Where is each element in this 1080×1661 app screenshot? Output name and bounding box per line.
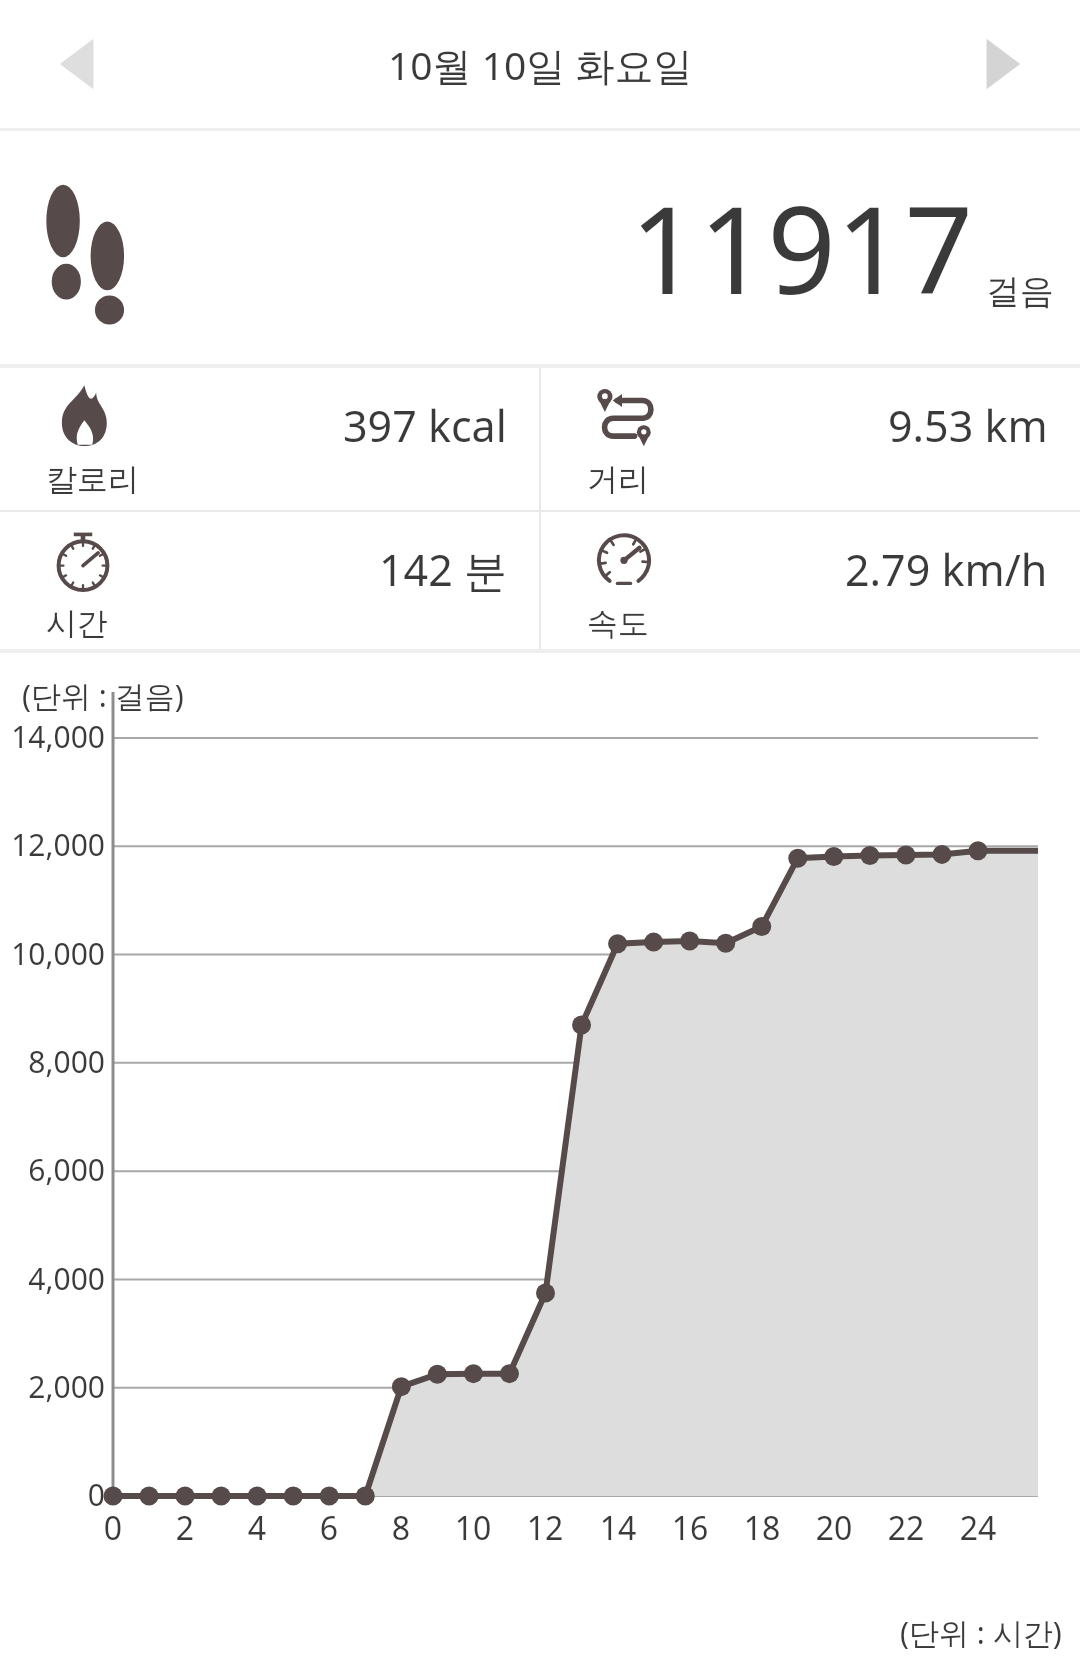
staticText: 9.53 km	[888, 396, 1048, 455]
staticText: 397 kcal	[343, 396, 507, 455]
staticText: 4	[227, 1506, 287, 1550]
staticText: 10	[443, 1506, 503, 1550]
staticText: 2,000	[10, 1366, 105, 1407]
staticText: 8	[371, 1506, 431, 1550]
staticText: 12	[515, 1506, 575, 1550]
staticText: 속도	[587, 604, 649, 643]
staticText: 6,000	[10, 1149, 105, 1190]
staticText: 10,000	[10, 933, 105, 974]
staticText: 8,000	[10, 1041, 105, 1082]
staticText: 18	[732, 1506, 792, 1550]
staticText: (단위 : 시간)	[900, 1612, 1062, 1653]
staticText: (단위 : 걸음)	[22, 675, 184, 716]
staticText: 걸음	[986, 270, 1054, 313]
staticText: 22	[876, 1506, 936, 1550]
staticText: 0	[10, 1474, 105, 1515]
staticText: 칼로리	[46, 460, 139, 499]
staticText: 6	[299, 1506, 359, 1550]
staticText: 14	[588, 1506, 648, 1550]
button[interactable]: 칼로리	[0, 368, 539, 510]
staticText: 11917	[630, 166, 974, 329]
staticText: 20	[804, 1506, 864, 1550]
staticText: 2.79 km/h	[845, 540, 1048, 599]
button[interactable]: 속도	[541, 512, 1080, 649]
staticText: 14,000	[10, 716, 105, 757]
staticText: 16	[660, 1506, 720, 1550]
button[interactable]: Steps	[0, 131, 1080, 364]
staticText: 142 분	[379, 540, 507, 599]
button[interactable]: 시간	[0, 512, 539, 649]
other: Steps	[42, 182, 150, 314]
staticText: 거리	[587, 460, 649, 499]
staticText: 12,000	[10, 824, 105, 865]
staticText: 4,000	[10, 1258, 105, 1299]
button[interactable]: Next day	[958, 22, 1042, 106]
staticText: 10월 10일 화요일	[388, 38, 693, 91]
staticText: 2	[155, 1506, 215, 1550]
staticText: 0	[83, 1506, 143, 1550]
button[interactable]: 거리	[541, 368, 1080, 510]
staticText: 24	[948, 1506, 1008, 1550]
staticText: 시간	[46, 604, 108, 643]
button[interactable]: Previous day	[38, 22, 122, 106]
